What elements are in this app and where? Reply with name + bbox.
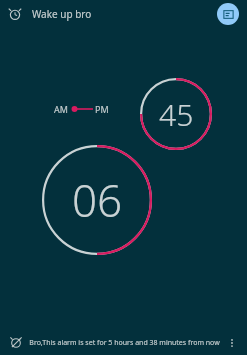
button[interactable]: AM bbox=[54, 103, 109, 115]
staticText: Wake up bro bbox=[32, 7, 92, 21]
staticText: AM bbox=[54, 103, 68, 115]
button[interactable]: Alarm off bbox=[6, 333, 26, 353]
button[interactable]: Keyboard input bbox=[217, 3, 239, 25]
staticText: 45 bbox=[159, 94, 194, 135]
staticText: Bro,This alarm is set for 5 hours and 38… bbox=[26, 338, 223, 348]
button[interactable]: More options bbox=[223, 334, 241, 352]
button[interactable]: 06 bbox=[42, 145, 152, 255]
staticText: 06 bbox=[72, 170, 123, 230]
button[interactable]: 45 bbox=[140, 78, 212, 150]
staticText: PM bbox=[95, 103, 109, 115]
